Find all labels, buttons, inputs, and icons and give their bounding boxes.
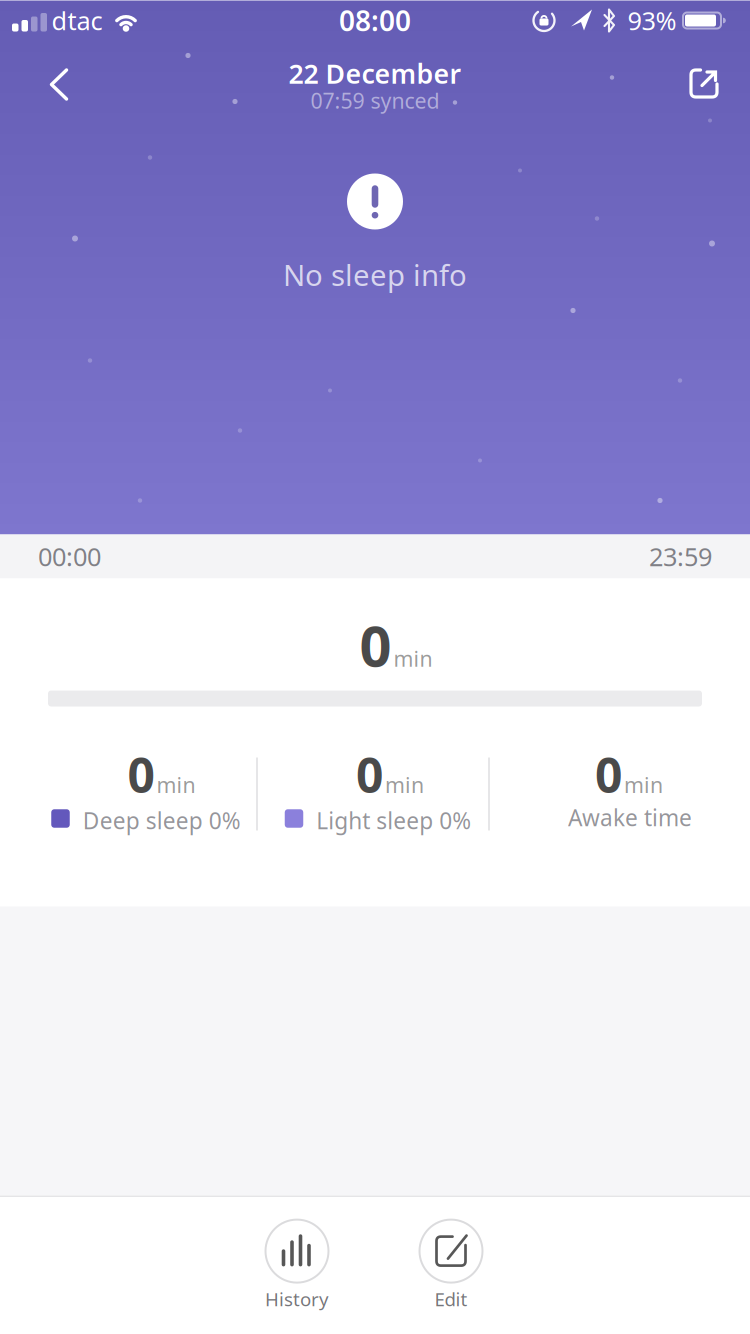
- staticText: 0: [359, 608, 391, 682]
- button[interactable]: History: [264, 1219, 329, 1311]
- staticText: Deep sleep 0%: [83, 805, 241, 835]
- staticText: Light sleep 0%: [316, 805, 471, 835]
- staticText: 08:00: [339, 2, 411, 39]
- staticText: min: [156, 771, 195, 799]
- staticText: min: [385, 771, 424, 799]
- button[interactable]: Edit: [418, 1219, 483, 1311]
- staticText: 0: [595, 743, 622, 806]
- staticText: dtac: [51, 4, 102, 37]
- staticText: 0: [127, 743, 154, 806]
- staticText: min: [624, 771, 663, 799]
- staticText: No sleep info: [283, 255, 467, 294]
- staticText: 23:59: [649, 540, 712, 573]
- staticText: 22 December: [288, 56, 461, 91]
- staticText: 07:59 synced: [310, 86, 439, 115]
- button[interactable]: Share: [674, 53, 734, 113]
- staticText: min: [393, 644, 432, 673]
- staticText: 00:00: [38, 540, 101, 573]
- staticText: Awake time: [568, 802, 692, 832]
- staticText: 93%: [627, 4, 676, 37]
- staticText: 0: [356, 743, 383, 806]
- staticText: Edit: [434, 1287, 467, 1311]
- staticText: History: [265, 1287, 329, 1311]
- button[interactable]: Back: [29, 54, 89, 114]
